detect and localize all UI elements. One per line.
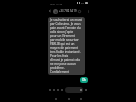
button[interactable]: Send	[84, 88, 88, 92]
button[interactable]: Home	[66, 96, 71, 101]
button[interactable]: Recents	[53, 96, 58, 101]
button[interactable]: Add	[48, 88, 52, 92]
staticText: Je souhaiterai un envoi par Colissimo. J…	[50, 18, 83, 74]
button[interactable]: Ok	[80, 77, 88, 83]
button[interactable]	[65, 87, 83, 93]
button[interactable]: Call	[77, 9, 81, 13]
button[interactable]: Back	[46, 6, 90, 16]
staticText: 15:46	[56, 2, 63, 5]
staticText: Msg	[50, 2, 55, 5]
staticText: +33 7 82 54 19	[59, 9, 77, 13]
button[interactable]: Voice message	[60, 88, 64, 92]
button[interactable]: Camera	[52, 88, 56, 92]
button[interactable]: Back	[78, 96, 83, 101]
button[interactable]: Gallery	[56, 88, 60, 92]
staticText: 4G	[81, 2, 84, 5]
other: Back	[48, 9, 52, 13]
button[interactable]: Je souhaiterai un envoi par Colissimo. J…	[48, 17, 85, 75]
staticText: Ok	[82, 78, 86, 82]
button[interactable]: More options	[86, 9, 90, 13]
